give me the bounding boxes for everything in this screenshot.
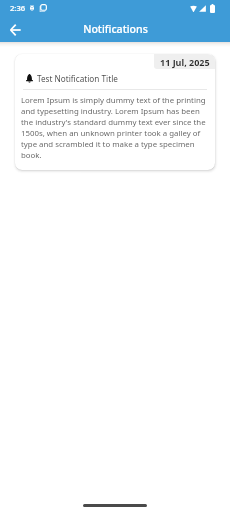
staticText: Test Notification Title [37, 73, 118, 84]
staticText: Lorem Ipsum is simply dummy text of the … [21, 95, 208, 161]
staticText: 2:36 [10, 3, 26, 13]
staticText: 11 Jul, 2025 [160, 56, 210, 68]
staticText: Notifications [83, 22, 148, 36]
button[interactable]: Back [4, 18, 27, 41]
button[interactable]: 11 Jul, 2025 [15, 54, 215, 170]
